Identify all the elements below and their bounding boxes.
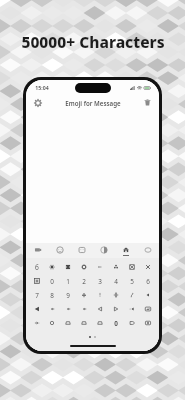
button[interactable]: Category 3 [71, 243, 93, 258]
button[interactable]: Symbol 19 [76, 288, 92, 302]
button[interactable]: Symbol 17 [44, 288, 60, 302]
button[interactable]: Symbol 4 [92, 260, 108, 274]
button[interactable]: Settings [32, 97, 43, 108]
button[interactable]: Symbol 18 [60, 288, 76, 302]
button[interactable]: Symbol 26 [60, 302, 76, 316]
button[interactable]: Symbol 30 [124, 302, 140, 316]
button[interactable]: Symbol 15 [140, 274, 156, 288]
button[interactable]: Category 6 [137, 243, 159, 258]
button[interactable]: Symbol 29 [108, 302, 124, 316]
button[interactable]: Symbol 27 [76, 302, 92, 316]
button[interactable]: Symbol 24 [29, 302, 44, 316]
staticText: 7 [35, 291, 39, 300]
button[interactable]: Category 4 [93, 243, 115, 258]
button[interactable]: Symbol 38 [124, 316, 140, 330]
button[interactable]: Symbol 39 [140, 316, 156, 330]
staticText: Emoji for Message [65, 99, 121, 107]
staticText: 0 [50, 277, 54, 286]
button[interactable]: Symbol 25 [44, 302, 60, 316]
staticText: 50000+ Characters [21, 31, 165, 52]
button[interactable]: Symbol 22 [124, 288, 140, 302]
staticText: 5 [130, 277, 134, 286]
button[interactable]: Symbol 31 [140, 302, 156, 316]
button[interactable]: Symbol 11 [76, 274, 92, 288]
button[interactable]: Symbol 33 [44, 316, 60, 330]
button[interactable]: Category 1 [26, 243, 49, 258]
staticText: 3 [98, 277, 102, 286]
button[interactable]: Symbol 28 [92, 302, 108, 316]
button[interactable]: Symbol 34 [60, 316, 76, 330]
button[interactable]: Symbol 21 [108, 288, 124, 302]
button[interactable]: Symbol 6 [124, 260, 140, 274]
staticText: 1 [66, 277, 70, 286]
button[interactable]: Symbol 13 [108, 274, 124, 288]
button[interactable]: Symbol 20 [92, 288, 108, 302]
button[interactable]: Symbol 14 [124, 274, 140, 288]
button[interactable]: Category 5 [115, 243, 137, 258]
button[interactable]: Symbol 10 [60, 274, 76, 288]
staticText: 4 [114, 277, 118, 286]
button[interactable]: Symbol 36 [92, 316, 108, 330]
staticText: 15:04 [35, 84, 49, 91]
button[interactable]: Symbol 23 [140, 288, 156, 302]
button[interactable]: Symbol 5 [108, 260, 124, 274]
button[interactable]: Symbol 37 [108, 316, 124, 330]
staticText: 6 [146, 277, 150, 286]
staticText: 9 [66, 291, 70, 300]
button[interactable]: Symbol 12 [92, 274, 108, 288]
button[interactable]: Symbol 8 [29, 274, 44, 288]
staticText: 2 [82, 277, 86, 286]
button[interactable]: Symbol 2 [60, 260, 76, 274]
button[interactable]: Category 2 [49, 243, 71, 258]
staticText: б [35, 263, 39, 272]
button[interactable]: Symbol 32 [29, 316, 44, 330]
button[interactable]: Symbol 35 [76, 316, 92, 330]
button[interactable]: Symbol 1 [44, 260, 60, 274]
button[interactable]: Symbol 9 [44, 274, 60, 288]
button[interactable]: Delete [142, 97, 153, 108]
button[interactable]: Symbol 7 [140, 260, 156, 274]
button[interactable]: Symbol 3 [76, 260, 92, 274]
button[interactable]: Symbol 16 [29, 288, 44, 302]
button[interactable]: Symbol 0 [29, 260, 44, 274]
staticText: 0 [114, 319, 118, 328]
staticText: 8 [50, 291, 54, 300]
